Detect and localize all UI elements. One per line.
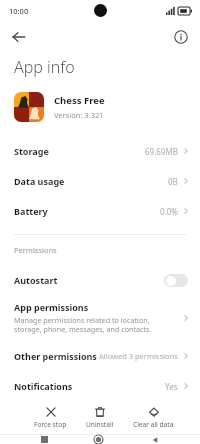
staticText: Uninstall	[86, 420, 114, 429]
button[interactable]: Other permissions	[0, 341, 200, 371]
staticText: Version: 3.321	[54, 110, 104, 120]
button[interactable]: Notifications	[0, 371, 200, 401]
staticText: Battery	[14, 205, 48, 217]
button[interactable]: Force stop	[32, 405, 69, 430]
staticText: 69.69MB	[145, 146, 178, 157]
button[interactable]: Uninstall	[84, 405, 116, 430]
button[interactable]: Battery	[0, 196, 200, 226]
button[interactable]: Back	[6, 24, 32, 50]
staticText: App info	[14, 56, 75, 78]
staticText: 10:00	[9, 6, 29, 16]
staticText: Other permissions	[14, 350, 97, 362]
staticText: Yes	[165, 381, 178, 392]
staticText: Notifications	[14, 380, 73, 392]
button[interactable]: About	[168, 24, 194, 50]
button[interactable]: Clear all data	[131, 405, 176, 430]
staticText: Autostart	[14, 274, 58, 286]
staticText: App permissions	[14, 301, 89, 313]
staticText: Allowed 3 permissions	[99, 351, 178, 361]
button[interactable]: Storage	[0, 136, 200, 166]
staticText: Data usage	[14, 175, 65, 187]
staticText: Chess Free	[54, 94, 105, 107]
staticText: Storage	[14, 145, 49, 157]
staticText: Permissions	[14, 245, 57, 255]
staticText: Force stop	[34, 420, 67, 429]
button[interactable]: Recents	[33, 435, 55, 444]
button[interactable]: Back	[144, 435, 166, 444]
staticText: 0B	[168, 176, 178, 187]
staticText: Clear all data	[133, 420, 174, 429]
staticText: 0.0%	[160, 206, 178, 217]
button[interactable]: Data usage	[0, 166, 200, 196]
button[interactable]: Chess Free	[0, 90, 200, 124]
button[interactable]: Autostart	[0, 265, 200, 295]
button[interactable]: App permissions	[0, 295, 200, 341]
staticText: Manage permissions related to location, …	[14, 315, 176, 335]
button[interactable]: Home	[88, 435, 110, 444]
